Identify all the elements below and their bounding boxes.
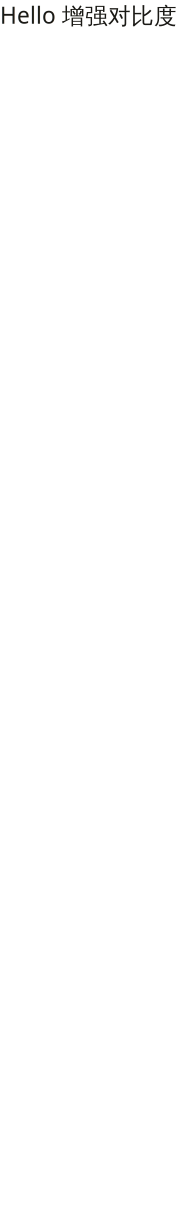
staticText: Hello 增强对比度 bbox=[0, 0, 177, 30]
